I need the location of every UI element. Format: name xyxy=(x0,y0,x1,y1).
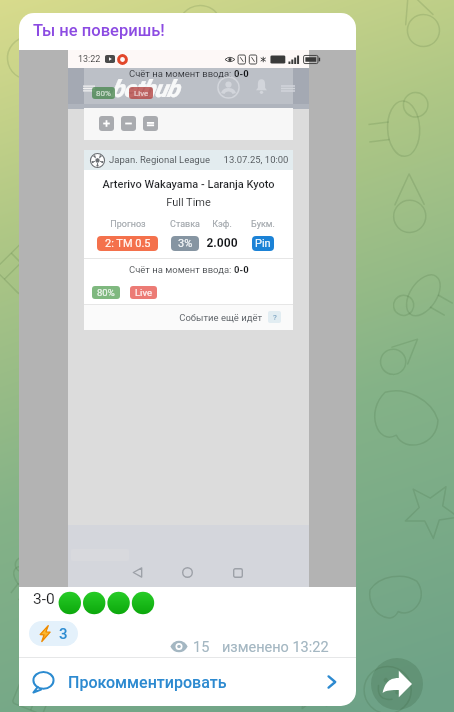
staticText: ? xyxy=(273,313,277,322)
staticText: 80% xyxy=(97,287,115,298)
staticText: Событие ещё идёт xyxy=(145,312,262,323)
staticText: 80% xyxy=(96,89,111,98)
staticText: Прогноз xyxy=(98,219,158,230)
staticText: 13:22 xyxy=(78,54,101,65)
staticText: Прокомментировать xyxy=(68,673,227,692)
staticText: Счёт на момент ввода: xyxy=(129,68,234,79)
staticText: 15 xyxy=(193,639,210,656)
button[interactable]: Forward xyxy=(371,658,423,710)
staticText: Full Time xyxy=(84,196,293,209)
staticText: Live xyxy=(135,287,153,298)
staticText: 3 xyxy=(59,625,68,643)
staticText: Кэф. xyxy=(202,219,242,230)
staticText: 3% xyxy=(178,237,193,250)
staticText: 2: ТМ 0.5 xyxy=(105,237,151,250)
staticText: Live xyxy=(134,89,149,98)
staticText: изменено 13:22 xyxy=(222,639,329,656)
staticText: Pin xyxy=(255,237,271,250)
button[interactable]: Прокомментировать xyxy=(19,658,356,706)
staticText: 2.000 xyxy=(202,236,242,250)
staticText: bethub xyxy=(111,75,179,103)
staticText: Букм. xyxy=(243,219,283,230)
staticText: 0-0 xyxy=(234,264,249,275)
staticText: 3-0 xyxy=(33,590,55,608)
staticText: Ставка xyxy=(165,219,205,230)
staticText: 13.07.25, 10:00 xyxy=(223,154,289,165)
button[interactable]: 3 xyxy=(29,621,78,646)
staticText: 0-0 xyxy=(234,68,249,79)
staticText: Счёт на момент ввода: xyxy=(129,264,234,275)
staticText: Ты не поверишь! xyxy=(33,21,165,40)
staticText: Japan. Regional League xyxy=(109,154,210,165)
staticText: Arterivo Wakayama - Laranja Kyoto xyxy=(84,178,293,191)
